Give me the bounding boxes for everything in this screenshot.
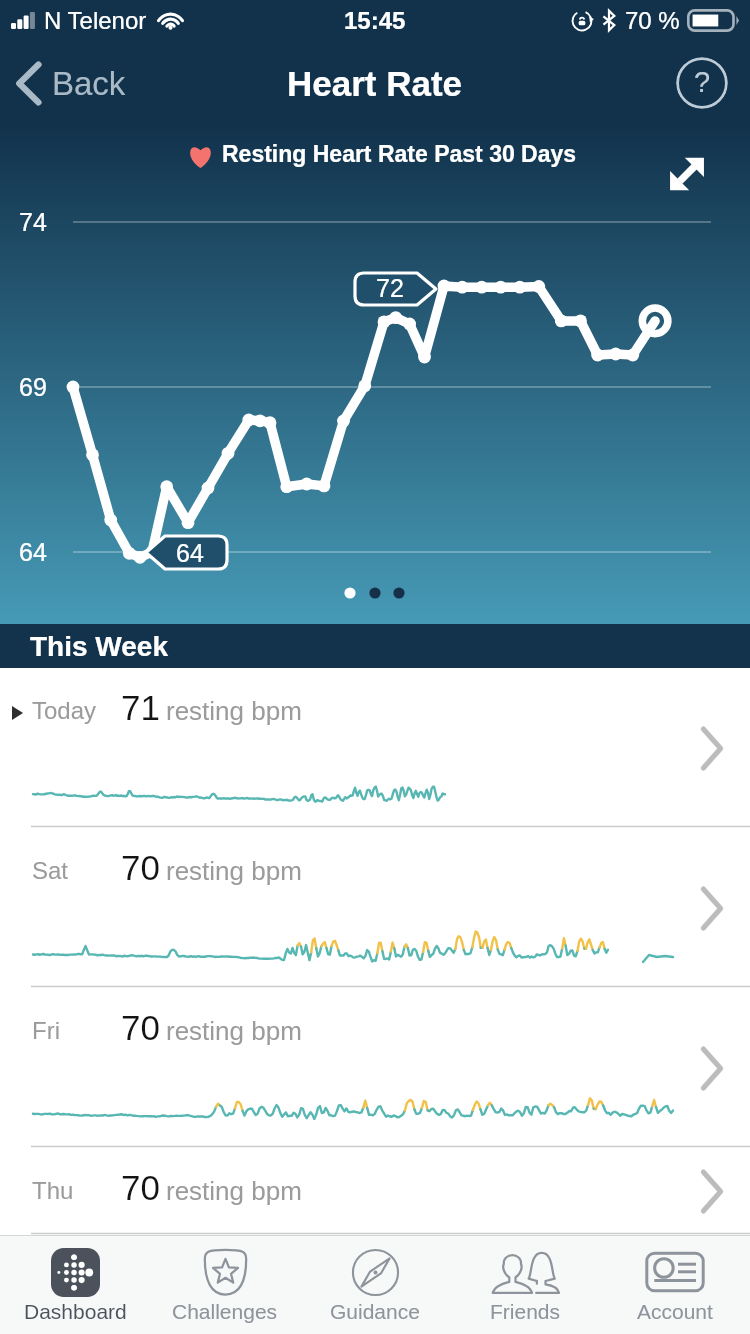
staticText: Heart Rate bbox=[287, 64, 463, 103]
staticText: Fri bbox=[32, 1017, 60, 1044]
button[interactable]: Today bbox=[0, 668, 750, 828]
staticText: Thu bbox=[32, 1177, 74, 1204]
staticText: Dashboard bbox=[24, 1300, 127, 1323]
staticText: Resting Heart Rate Past 30 Days bbox=[222, 141, 577, 167]
staticText: This Week bbox=[30, 631, 168, 662]
button[interactable]: Thu bbox=[0, 1148, 750, 1235]
staticText: 71 bbox=[121, 688, 160, 727]
staticText: Today bbox=[32, 697, 97, 724]
button[interactable]: Sat bbox=[0, 828, 750, 988]
button[interactable]: Back bbox=[0, 52, 142, 115]
button[interactable]: Challenges bbox=[150, 1236, 300, 1334]
staticText: Sat bbox=[32, 857, 69, 884]
staticText: 70 % bbox=[625, 7, 680, 34]
button[interactable]: Friends bbox=[450, 1236, 600, 1334]
staticText: resting bpm bbox=[166, 1016, 302, 1045]
staticText: Guidance bbox=[330, 1300, 420, 1323]
staticText: 72 bbox=[376, 274, 404, 302]
staticText: N Telenor bbox=[44, 7, 147, 34]
staticText: 70 bbox=[121, 1168, 160, 1207]
button[interactable]: Help bbox=[676, 57, 728, 109]
button[interactable]: Expand chart bbox=[660, 147, 714, 201]
staticText: 74 bbox=[19, 208, 47, 236]
staticText: Account bbox=[637, 1300, 713, 1323]
staticText: resting bpm bbox=[166, 1176, 302, 1205]
staticText: 64 bbox=[19, 538, 47, 566]
staticText: Back bbox=[52, 65, 126, 102]
staticText: 70 bbox=[121, 848, 160, 887]
staticText: 69 bbox=[19, 373, 47, 401]
button[interactable]: Guidance bbox=[300, 1236, 450, 1334]
staticText: 70 bbox=[121, 1008, 160, 1047]
staticText: resting bpm bbox=[166, 696, 302, 725]
staticText: ? bbox=[694, 66, 711, 98]
button[interactable]: Account bbox=[600, 1236, 750, 1334]
button[interactable]: Fri bbox=[0, 988, 750, 1148]
staticText: 64 bbox=[176, 539, 204, 567]
staticText: Challenges bbox=[172, 1300, 278, 1323]
button[interactable]: Dashboard bbox=[0, 1236, 150, 1334]
staticText: 15:45 bbox=[344, 7, 406, 34]
staticText: Friends bbox=[490, 1300, 561, 1323]
staticText: resting bpm bbox=[166, 856, 302, 885]
